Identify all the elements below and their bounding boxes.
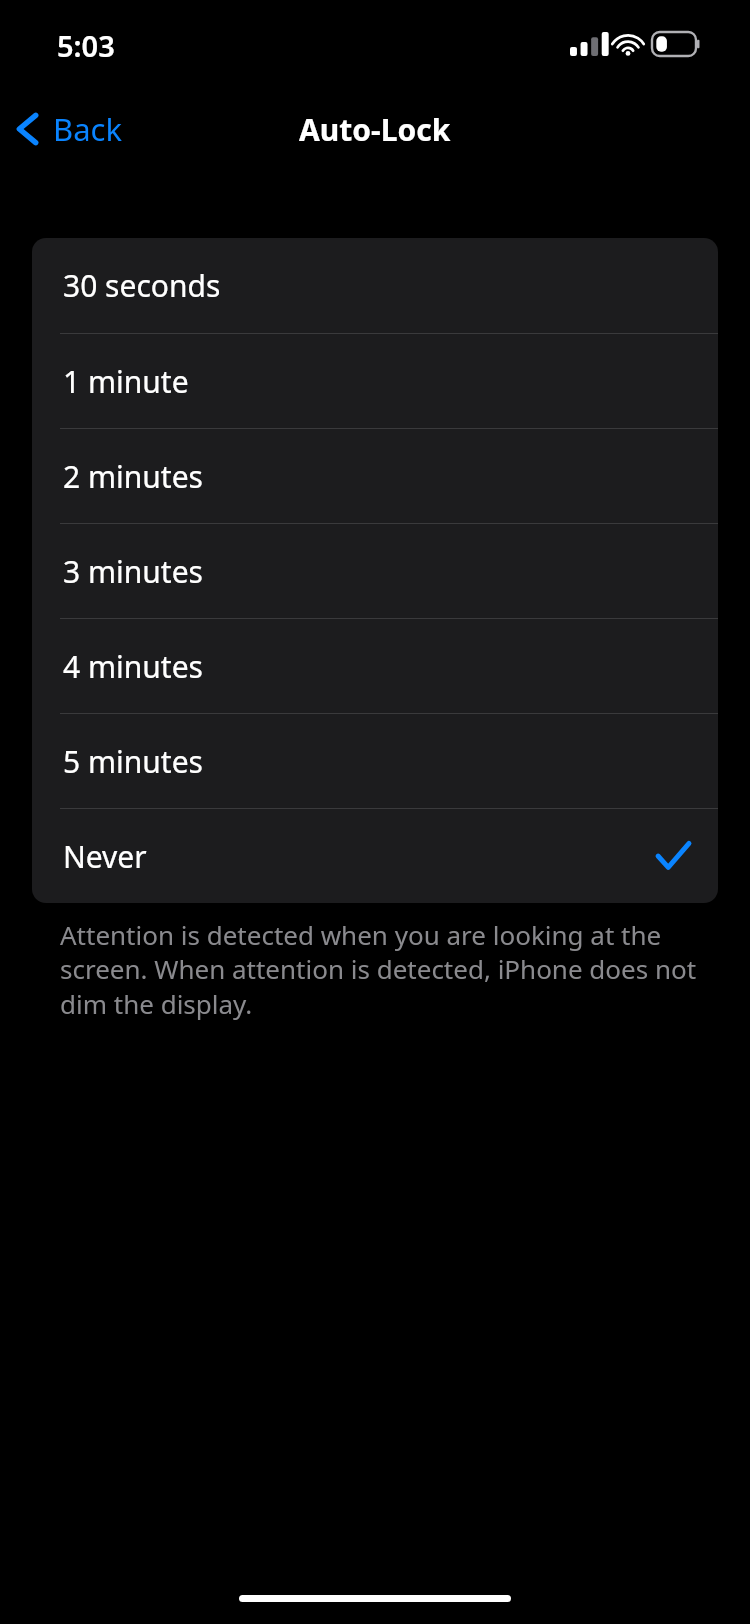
staticText: 3 minutes bbox=[63, 551, 203, 592]
other: Home indicator bbox=[239, 1595, 511, 1602]
button[interactable]: 5 minutes bbox=[32, 714, 718, 808]
staticText: Attention is detected when you are looki… bbox=[60, 917, 702, 1022]
button[interactable]: 30 seconds bbox=[32, 238, 718, 333]
button[interactable]: 4 minutes bbox=[32, 619, 718, 713]
button[interactable]: 1 minute bbox=[32, 334, 718, 428]
button[interactable]: 2 minutes bbox=[32, 429, 718, 523]
staticText: 1 minute bbox=[63, 361, 189, 402]
staticText: Never bbox=[63, 836, 147, 877]
button[interactable]: Never bbox=[32, 809, 718, 903]
staticText: Back bbox=[53, 108, 122, 150]
staticText: 30 seconds bbox=[63, 265, 221, 306]
button[interactable]: 3 minutes bbox=[32, 524, 718, 618]
staticText: 4 minutes bbox=[63, 646, 203, 687]
staticText: Auto-Lock bbox=[299, 109, 451, 150]
staticText: 2 minutes bbox=[63, 456, 203, 497]
staticText: 5:03 bbox=[57, 26, 115, 65]
button[interactable]: Back bbox=[0, 100, 140, 158]
staticText: 5 minutes bbox=[63, 741, 203, 782]
